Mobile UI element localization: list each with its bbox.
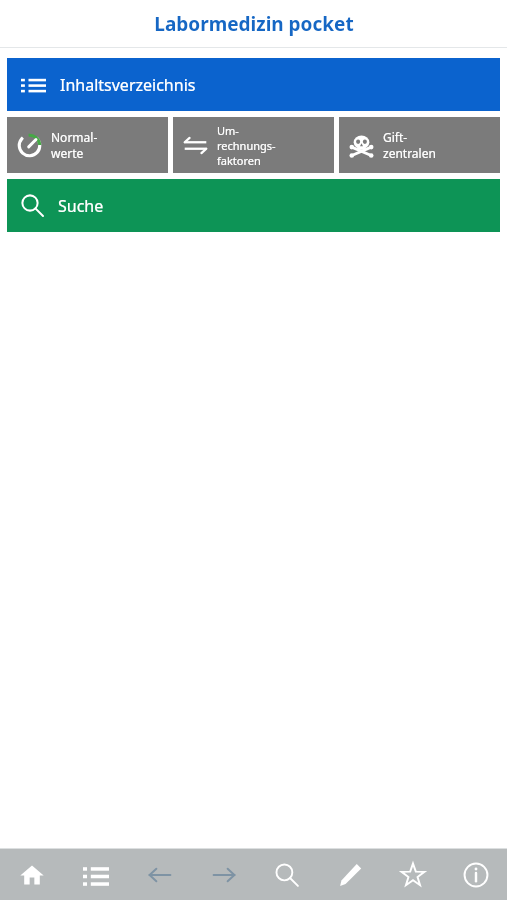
button[interactable]: Normalwerte — [7, 117, 168, 173]
button[interactable]: Suche — [7, 179, 500, 232]
staticText: Suche — [58, 195, 104, 217]
staticText: Inhaltsverzeichnis — [60, 74, 196, 96]
button[interactable]: Back — [128, 849, 192, 900]
staticText: Labormedizin pocket — [154, 11, 354, 37]
button[interactable]: Search — [255, 849, 318, 900]
button[interactable]: Contents — [64, 849, 128, 900]
staticText: Gift- zentralen — [383, 129, 436, 161]
button[interactable]: Info — [444, 849, 507, 900]
button[interactable]: Forward — [192, 849, 255, 900]
button[interactable]: Inhaltsverzeichnis — [7, 58, 500, 111]
staticText: Normal- werte — [51, 129, 98, 161]
button[interactable]: Favorites — [381, 849, 444, 900]
button[interactable]: Giftzentralen — [339, 117, 500, 173]
button[interactable]: Edit — [318, 849, 381, 900]
button[interactable]: Umrechnungsfaktoren — [173, 117, 334, 173]
button[interactable]: Home — [0, 849, 64, 900]
staticText: Um- rechnungs- faktoren — [217, 123, 276, 168]
